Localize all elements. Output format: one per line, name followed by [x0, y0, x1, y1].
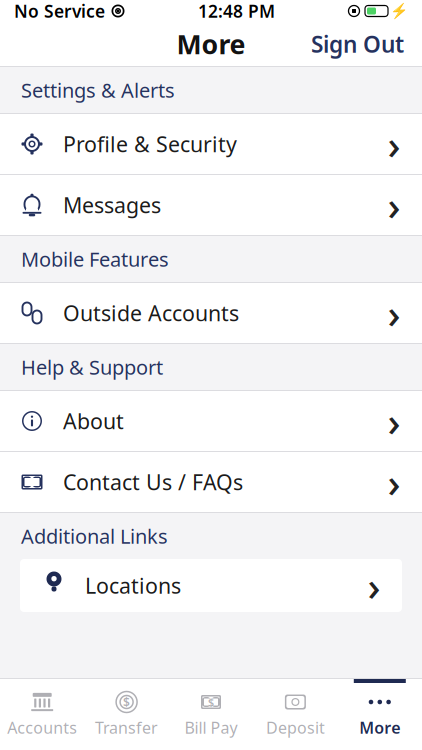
staticText: Bill Pay	[184, 717, 237, 738]
button[interactable]: About	[0, 391, 422, 451]
button[interactable]: More	[338, 679, 422, 750]
staticText: No Service	[14, 0, 105, 22]
button[interactable]: $	[169, 679, 253, 750]
staticText: Settings & Alerts	[21, 77, 175, 103]
staticText: Accounts	[7, 717, 77, 738]
button[interactable]: Accounts	[0, 679, 84, 750]
staticText: Locations	[85, 571, 181, 600]
staticText: More	[176, 26, 245, 62]
button[interactable]: $	[84, 679, 169, 750]
staticText: ⚡	[390, 3, 408, 19]
button[interactable]: Contact Us / FAQs	[0, 452, 422, 512]
button[interactable]: Messages	[0, 175, 422, 235]
staticText: Contact Us / FAQs	[63, 468, 243, 496]
staticText: ›	[387, 117, 400, 170]
button[interactable]: Outside Accounts	[0, 283, 422, 343]
staticText: Profile & Security	[63, 130, 237, 158]
staticText: Mobile Features	[21, 246, 169, 272]
staticText: Help & Support	[21, 354, 163, 380]
button[interactable]: Locations	[20, 559, 402, 612]
button[interactable]: Profile & Security	[0, 114, 422, 174]
staticText: More	[359, 717, 400, 738]
staticText: $	[208, 695, 214, 709]
staticText: About	[63, 407, 124, 435]
staticText: Sign Out	[311, 29, 404, 59]
staticText: Messages	[63, 191, 161, 219]
staticText: ›	[387, 394, 400, 447]
staticText: ›	[367, 559, 380, 612]
staticText: ›	[387, 178, 400, 231]
staticText: 12:48 PM	[198, 0, 275, 22]
staticText: Deposit	[266, 717, 325, 738]
button[interactable]: Deposit	[253, 679, 338, 750]
staticText: Additional Links	[21, 523, 168, 549]
staticText: Transfer	[95, 717, 158, 738]
staticText: Outside Accounts	[63, 299, 239, 327]
button[interactable]: Sign Out	[293, 18, 422, 70]
staticText: ›	[387, 286, 400, 339]
staticText: $	[123, 694, 130, 710]
staticText: ›	[387, 455, 400, 508]
